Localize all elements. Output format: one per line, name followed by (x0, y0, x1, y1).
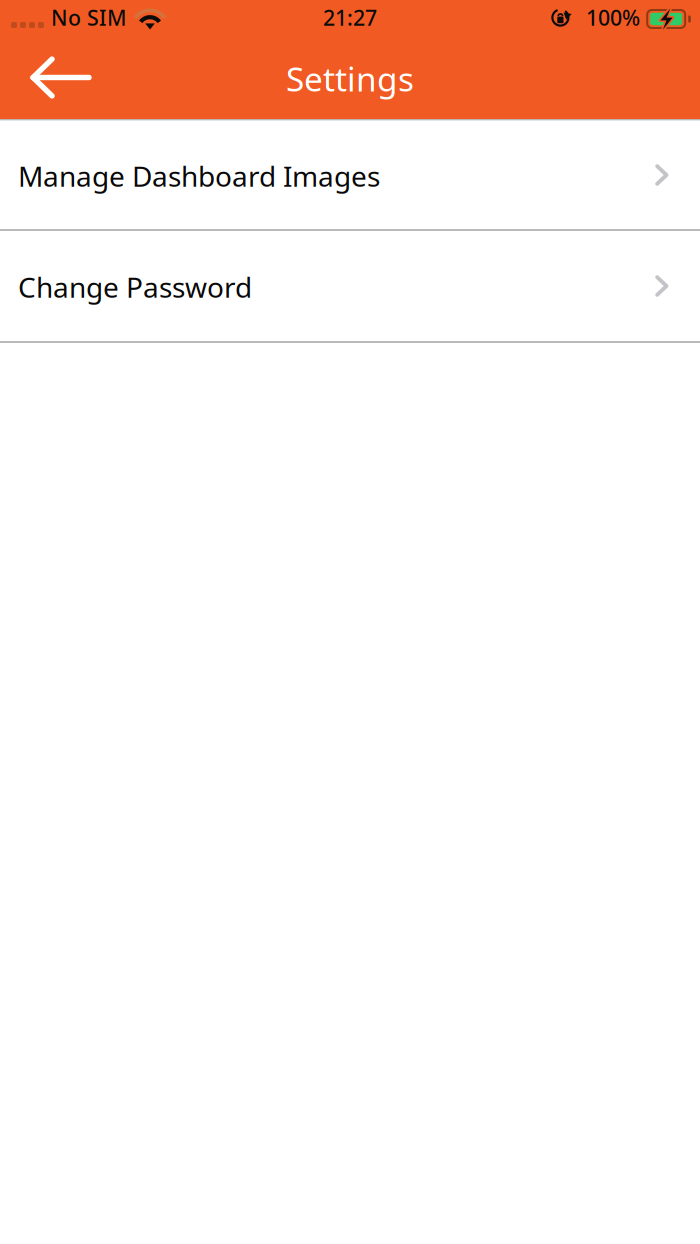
staticText: 100% (586, 3, 640, 32)
staticText: Settings (286, 56, 414, 101)
staticText: Manage Dashboard Images (18, 157, 380, 195)
button[interactable]: Change Password (0, 231, 700, 341)
staticText: Change Password (18, 268, 252, 306)
staticText: No SIM (51, 3, 127, 32)
button[interactable]: Manage Dashboard Images (0, 121, 700, 229)
button[interactable]: Back (0, 38, 102, 119)
staticText: 21:27 (323, 3, 377, 32)
